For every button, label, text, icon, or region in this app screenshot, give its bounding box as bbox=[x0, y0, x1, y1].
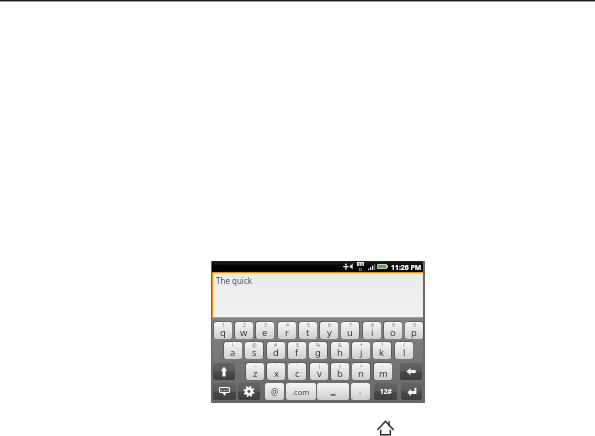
staticText: * bbox=[360, 342, 363, 348]
staticText: r bbox=[285, 326, 289, 339]
staticText: 12# bbox=[380, 387, 392, 396]
button[interactable]: Symbols bbox=[374, 383, 397, 400]
staticText: 1 bbox=[222, 322, 225, 328]
button[interactable]: Space bbox=[317, 383, 349, 400]
staticText: c bbox=[295, 367, 300, 380]
staticText: 7 bbox=[349, 322, 352, 328]
staticText: 3 bbox=[264, 322, 267, 328]
button[interactable]: @ bbox=[265, 383, 284, 400]
button[interactable]: $ bbox=[288, 342, 306, 359]
staticText: k bbox=[379, 346, 385, 359]
button[interactable]: % bbox=[309, 342, 327, 359]
staticText: @ bbox=[252, 342, 257, 348]
staticText: o bbox=[390, 326, 396, 339]
staticText: 6 bbox=[328, 322, 331, 328]
staticText: - bbox=[382, 363, 384, 369]
button[interactable]: ? bbox=[373, 342, 391, 359]
button[interactable]: 0 bbox=[405, 322, 423, 339]
button[interactable]: 7 bbox=[341, 322, 359, 339]
staticText: ~ bbox=[254, 363, 257, 369]
button[interactable]: 4 bbox=[278, 322, 296, 339]
staticText: | bbox=[318, 363, 321, 369]
button[interactable]: ' bbox=[288, 363, 306, 380]
staticText: x bbox=[274, 367, 279, 380]
button[interactable]: 2 bbox=[235, 322, 253, 339]
staticText: e bbox=[262, 326, 268, 339]
staticText: ? bbox=[381, 342, 384, 348]
staticText: u bbox=[347, 326, 353, 339]
staticText: @ bbox=[271, 386, 279, 397]
staticText: n bbox=[358, 367, 364, 380]
button[interactable]: # bbox=[267, 342, 285, 359]
staticText: d bbox=[273, 346, 279, 359]
staticText: ' bbox=[296, 363, 298, 369]
staticText: f bbox=[295, 346, 299, 359]
button[interactable]: 1 bbox=[214, 322, 232, 339]
staticText: 3G bbox=[358, 262, 364, 266]
button[interactable]: 5 bbox=[299, 322, 317, 339]
button[interactable]: Switch keyboard bbox=[213, 383, 236, 400]
button[interactable]: * bbox=[352, 342, 370, 359]
staticText: 4 bbox=[286, 322, 289, 328]
staticText: h bbox=[337, 346, 343, 359]
button[interactable]: / bbox=[395, 342, 413, 359]
staticText: z bbox=[253, 367, 258, 380]
staticText: The quick bbox=[216, 275, 253, 286]
button[interactable]: & bbox=[331, 342, 349, 359]
staticText: 0 bbox=[413, 322, 416, 328]
staticText: w bbox=[240, 326, 248, 339]
staticText: & bbox=[338, 342, 342, 348]
button[interactable]: Home bbox=[377, 421, 394, 435]
staticText: j bbox=[360, 346, 363, 359]
staticText: 2 bbox=[243, 322, 246, 328]
button[interactable]: @ bbox=[245, 342, 263, 359]
button[interactable]: . bbox=[351, 383, 370, 400]
button[interactable]: ) bbox=[331, 363, 349, 380]
staticText: ^ bbox=[360, 363, 363, 369]
staticText: m bbox=[379, 367, 388, 380]
button[interactable]: Settings bbox=[238, 383, 260, 400]
button[interactable]: Enter bbox=[401, 383, 422, 400]
staticText: 8 bbox=[371, 322, 374, 328]
button[interactable]: 8 bbox=[363, 322, 381, 339]
button[interactable]: Backspace bbox=[400, 363, 422, 380]
staticText: s bbox=[252, 346, 257, 359]
staticText: l bbox=[403, 346, 406, 359]
staticText: / bbox=[403, 342, 405, 348]
staticText: p bbox=[411, 326, 417, 339]
staticText: . bbox=[359, 385, 362, 396]
staticText: 9 bbox=[392, 322, 395, 328]
button[interactable]: - bbox=[374, 363, 392, 380]
staticText: ! bbox=[232, 342, 234, 348]
staticText: v bbox=[317, 367, 322, 380]
staticText: 5 bbox=[307, 322, 310, 328]
button[interactable]: .com bbox=[286, 383, 316, 400]
staticText: a bbox=[230, 346, 236, 359]
button[interactable]: ` bbox=[267, 363, 285, 380]
button[interactable]: 9 bbox=[384, 322, 402, 339]
staticText: ) bbox=[339, 363, 341, 369]
button[interactable]: | bbox=[310, 363, 328, 380]
staticText: t bbox=[306, 326, 310, 339]
staticText: g bbox=[315, 346, 321, 359]
button[interactable]: ^ bbox=[352, 363, 370, 380]
staticText: q bbox=[220, 326, 226, 339]
staticText: ` bbox=[275, 363, 277, 369]
staticText: $ bbox=[296, 342, 299, 348]
button[interactable]: ! bbox=[224, 342, 242, 359]
staticText: D bbox=[359, 267, 363, 273]
staticText: i bbox=[371, 326, 374, 339]
staticText: # bbox=[274, 342, 278, 348]
staticText: % bbox=[316, 342, 321, 348]
staticText: b bbox=[337, 367, 343, 380]
staticText: .com bbox=[292, 387, 310, 397]
button[interactable]: 6 bbox=[320, 322, 338, 339]
staticText: 11:26 PM bbox=[391, 263, 422, 272]
button[interactable]: 3 bbox=[256, 322, 274, 339]
button[interactable]: Shift bbox=[213, 363, 235, 380]
button[interactable]: ~ bbox=[246, 363, 264, 380]
staticText: y bbox=[327, 326, 332, 339]
